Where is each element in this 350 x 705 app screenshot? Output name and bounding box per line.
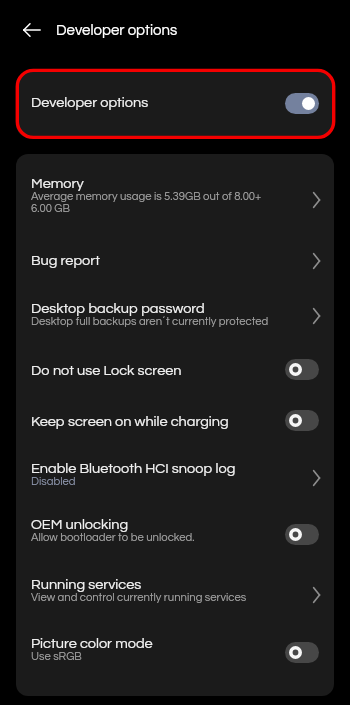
button[interactable]: Keep screen on while charging: [16, 404, 334, 451]
button[interactable]: Bug report: [16, 243, 334, 291]
staticText: Desktop backup password: [31, 301, 205, 316]
staticText: Keep screen on while charging: [31, 414, 229, 429]
staticText: 6.00 GB: [31, 203, 70, 215]
staticText: Developer options: [31, 95, 149, 110]
button[interactable]: Picture color mode: [16, 626, 334, 694]
staticText: Desktop full backups aren´t currently pr…: [31, 316, 269, 328]
button[interactable]: Do not use Lock screen: [16, 353, 334, 404]
button[interactable]: Developer options: [16, 71, 334, 138]
staticText: Average memory usage is 5.39GB out of 8.…: [31, 191, 262, 203]
staticText: View and control currently running servi…: [31, 592, 247, 604]
staticText: Do not use Lock screen: [31, 363, 182, 378]
button[interactable]: OEM unlocking: [16, 507, 334, 567]
staticText: Enable Bluetooth HCI snoop log: [31, 461, 236, 476]
staticText: Use sRGB: [31, 651, 82, 663]
button[interactable]: Enable Bluetooth HCI snoop log: [16, 451, 334, 507]
button[interactable]: Back: [15, 14, 48, 46]
staticText: Running services: [31, 577, 142, 592]
staticText: Picture color mode: [31, 636, 153, 651]
staticText: Allow bootloader to be unlocked.: [31, 532, 195, 544]
staticText: Memory: [31, 176, 84, 191]
staticText: Developer options: [56, 23, 178, 38]
button[interactable]: Running services: [16, 567, 334, 626]
staticText: Disabled: [31, 476, 76, 488]
button[interactable]: Memory: [16, 166, 334, 243]
staticText: Bug report: [31, 253, 100, 268]
staticText: OEM unlocking: [31, 517, 129, 532]
button[interactable]: Desktop backup password: [16, 291, 334, 353]
